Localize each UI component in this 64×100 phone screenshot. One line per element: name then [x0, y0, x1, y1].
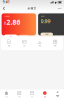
button[interactable]: 黄金积存	[38, 13, 64, 35]
staticText: 昨日收益(元)	[4, 15, 9, 17]
staticText: 明细	[39, 45, 41, 47]
staticText: 转出	[23, 45, 25, 47]
button[interactable]: 生活	[26, 91, 38, 98]
staticText: 消息	[44, 96, 46, 98]
button[interactable]: 转入	[4, 34, 17, 38]
staticText: 理财	[18, 96, 20, 98]
button[interactable]: 我的	[51, 91, 64, 98]
button[interactable]: 理财	[13, 91, 26, 98]
staticText: 去购买	[45, 34, 48, 35]
staticText: 2.86	[7, 18, 21, 27]
staticText: 收益	[8, 45, 10, 47]
button[interactable]: 去购买	[40, 33, 53, 36]
staticText: 9:41	[3, 0, 10, 4]
button[interactable]: Back	[2, 5, 6, 11]
button[interactable]: 收益	[1, 39, 17, 47]
button[interactable]: 转出	[19, 34, 28, 38]
button[interactable]: 首页	[0, 91, 13, 98]
staticText: 0.99	[40, 17, 50, 25]
button[interactable]: 昨日收益(元)	[2, 13, 36, 35]
staticText: 首页	[5, 96, 7, 98]
button[interactable]: 转出	[17, 39, 32, 47]
button[interactable]: 消息	[38, 91, 51, 98]
button[interactable]: 福利	[47, 39, 63, 47]
button[interactable]: More	[57, 6, 62, 10]
button[interactable]: 明细	[32, 39, 47, 47]
staticText: 黄金积存	[40, 15, 44, 17]
staticText: 转入	[10, 35, 12, 37]
staticText: 生活	[31, 96, 33, 98]
staticText: 余额宝	[27, 7, 36, 10]
staticText: 我的	[57, 96, 59, 98]
staticText: ¥	[4, 22, 6, 25]
staticText: 福利	[54, 45, 56, 47]
